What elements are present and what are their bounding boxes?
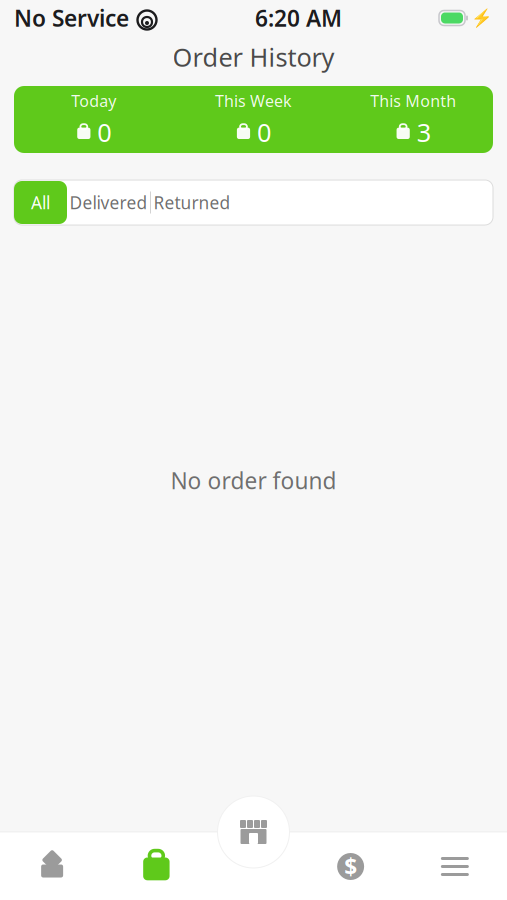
button[interactable]: Delivered — [67, 181, 150, 224]
staticText: This Month — [370, 90, 456, 111]
staticText: ⌂ — [36, 841, 68, 892]
button[interactable]: Orders — [104, 832, 208, 900]
staticText: This Week — [215, 90, 292, 111]
staticText: Returned — [153, 191, 230, 214]
staticText: Delivered — [69, 191, 147, 214]
button[interactable]: Home — [0, 832, 104, 900]
button[interactable]: Store — [217, 796, 289, 868]
button[interactable]: All — [14, 181, 67, 224]
staticText: $ — [344, 851, 357, 881]
staticText: 6:20 AM — [255, 3, 342, 33]
button[interactable]: Payments — [298, 832, 403, 900]
staticText: All — [31, 191, 50, 214]
staticText: Order History — [172, 40, 334, 74]
button[interactable]: Menu — [403, 832, 507, 900]
staticText: 0 — [97, 115, 111, 149]
staticText: Today — [71, 90, 116, 111]
staticText: No order found — [170, 465, 336, 495]
staticText: 3 — [417, 115, 431, 149]
staticText: No Service — [14, 3, 129, 33]
staticText: 0 — [257, 115, 271, 149]
staticText: ⚡ — [471, 8, 493, 28]
button[interactable]: Returned — [151, 181, 233, 224]
